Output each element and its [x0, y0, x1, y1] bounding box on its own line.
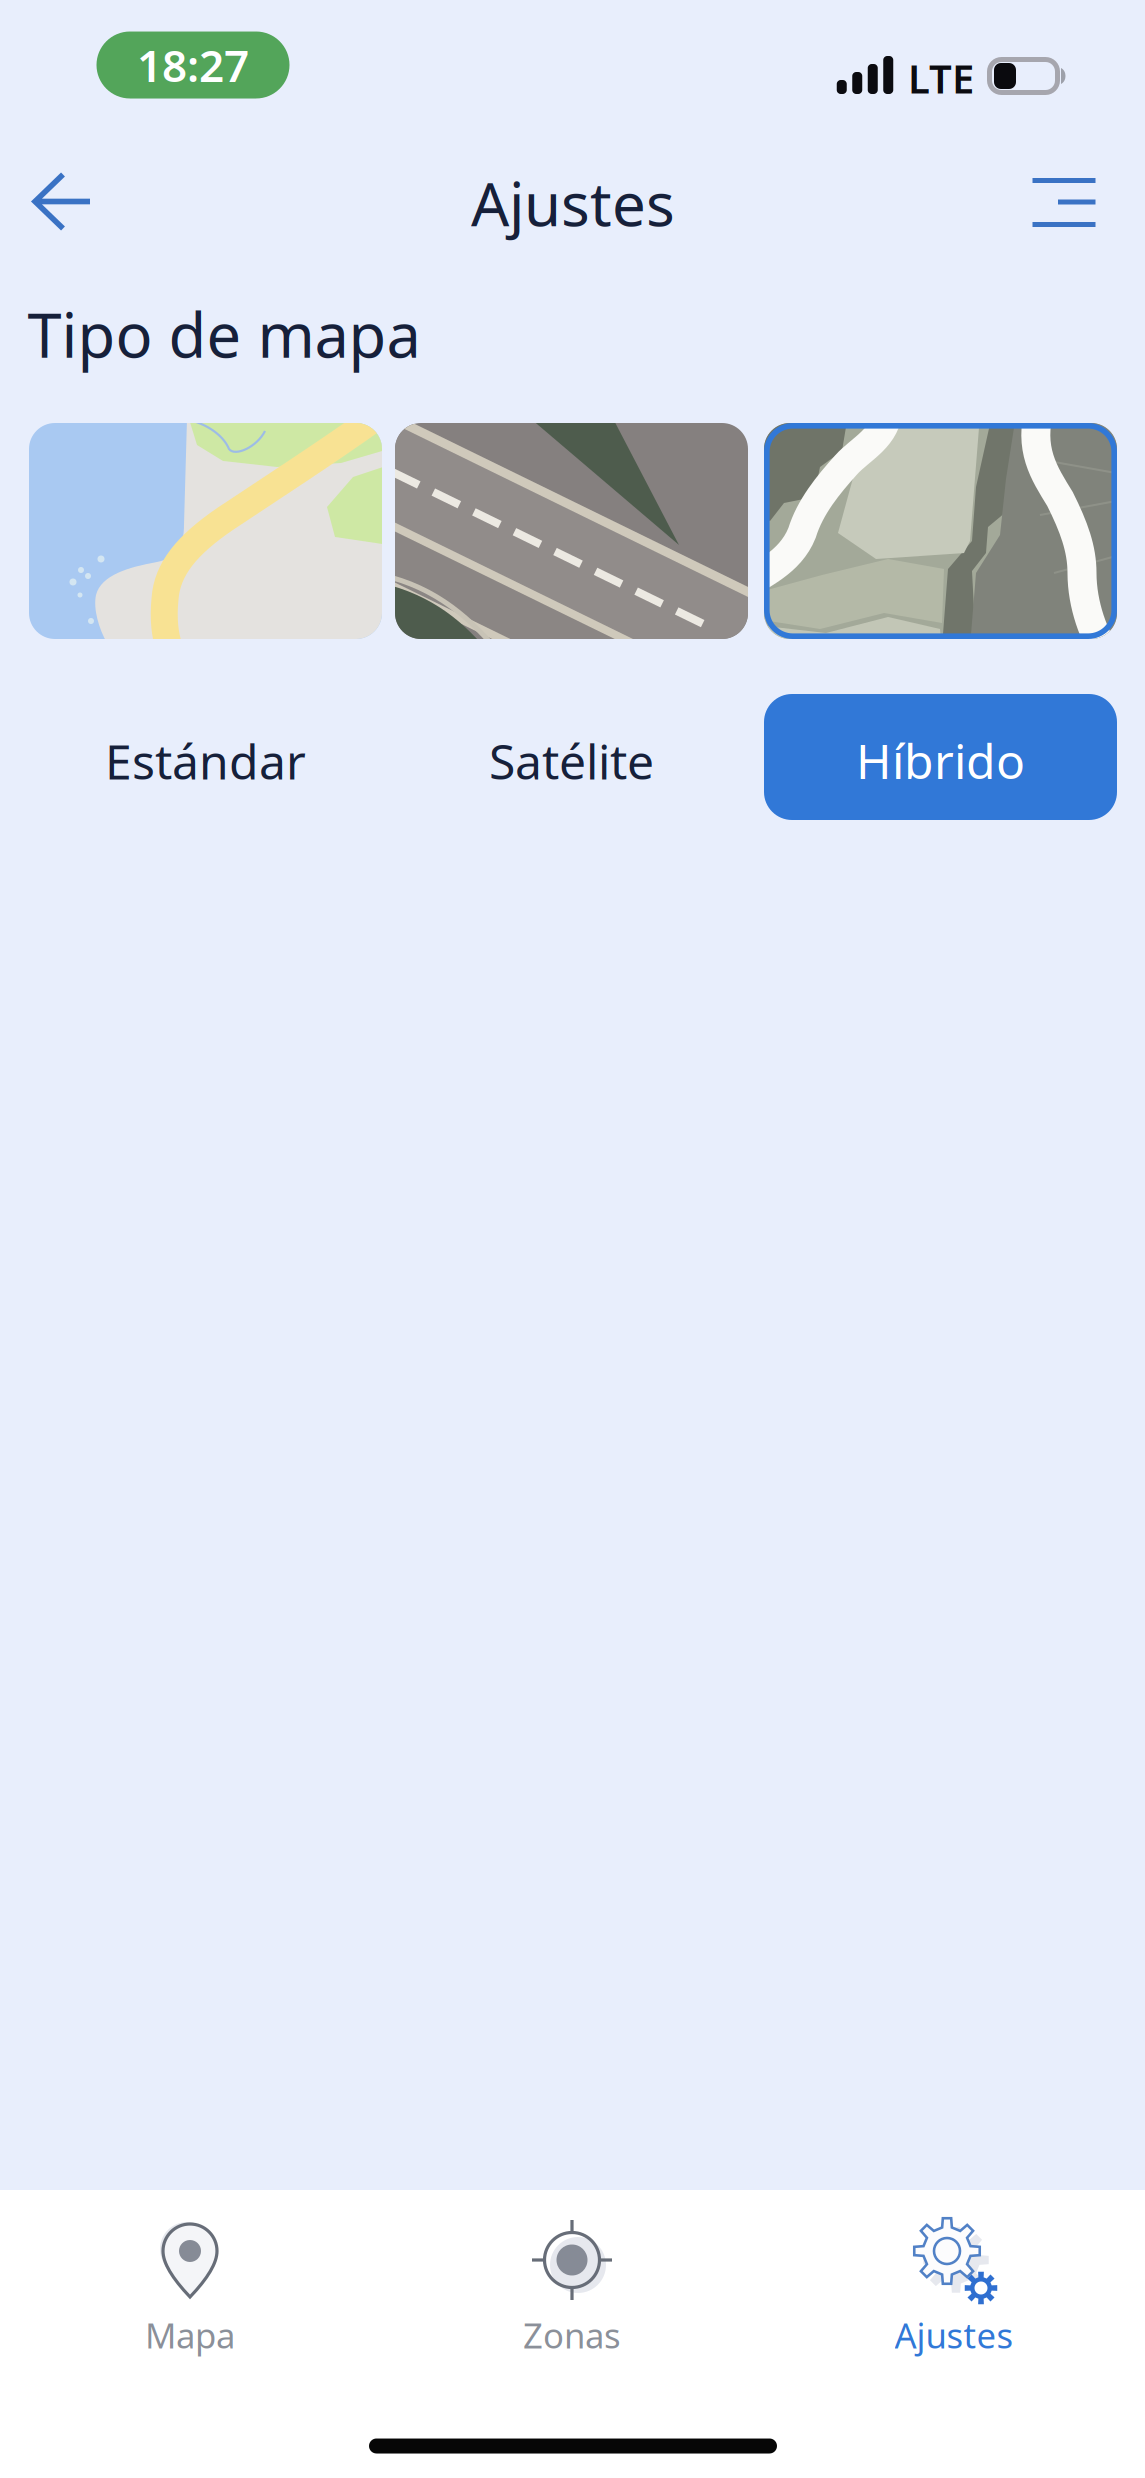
button[interactable] — [29, 423, 382, 639]
staticText: Satélite — [489, 729, 654, 793]
button[interactable]: Estándar — [29, 698, 382, 824]
staticText: Ajustes — [471, 163, 675, 243]
button[interactable]: Ajustes — [859, 2190, 1049, 2390]
button[interactable]: Híbrido — [764, 694, 1117, 820]
button[interactable] — [395, 423, 748, 639]
staticText: Mapa — [145, 2312, 235, 2358]
button[interactable]: Back — [0, 143, 125, 261]
button[interactable]: Satélite — [395, 698, 748, 824]
staticText: Estándar — [105, 729, 306, 793]
staticText: Híbrido — [856, 729, 1025, 792]
staticText: LTE — [908, 51, 974, 104]
button[interactable]: Mapa — [95, 2190, 285, 2390]
button[interactable]: Zonas — [477, 2190, 667, 2390]
button[interactable]: Menu — [1005, 147, 1123, 257]
staticText: 18:27 — [137, 36, 249, 94]
staticText: Tipo de mapa — [27, 293, 420, 375]
staticText: Zonas — [523, 2312, 621, 2358]
button[interactable] — [764, 423, 1117, 639]
staticText: Ajustes — [894, 2312, 1013, 2358]
